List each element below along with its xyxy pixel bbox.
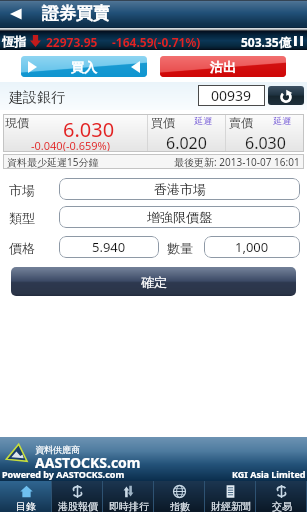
staticText: 確定 [141, 274, 167, 290]
staticText: 賣價 [229, 115, 253, 130]
staticText: 港股報價 [58, 500, 98, 512]
button[interactable]: 目錄 [0, 481, 52, 512]
staticText: 最後更新: 2013-10-07 16:01 [174, 155, 300, 169]
button[interactable]: 指數 [154, 481, 205, 512]
staticText: -0.040(-0.659%) [31, 138, 111, 153]
staticText: 恆指 [2, 34, 26, 49]
button[interactable]: 財經新聞 [205, 481, 256, 512]
button[interactable]: 香港市場 [59, 178, 300, 200]
staticText: AASTOCKS.com [35, 453, 141, 472]
staticText: 類型 [9, 210, 35, 226]
staticText: 市場 [9, 182, 35, 198]
button[interactable]: Back [8, 5, 24, 23]
staticText: 6.020 [166, 132, 207, 154]
staticText: 買價 [151, 115, 175, 130]
button[interactable]: 1,000 [204, 236, 300, 258]
button[interactable]: 港股報價 [52, 481, 103, 512]
staticText: 證券買賣 [42, 3, 110, 24]
button[interactable]: 交易 [256, 481, 307, 512]
staticText: 22973.95 [46, 34, 98, 50]
staticText: 交易 [272, 500, 292, 512]
button[interactable]: 確定 [11, 267, 296, 296]
staticText: 增強限價盤 [147, 209, 212, 225]
staticText: Powered by AASTOCKS.com [2, 468, 125, 480]
button[interactable]: 即時排行 [103, 481, 154, 512]
button[interactable]: 00939 [198, 85, 265, 106]
staticText: KGI Asia Limited [232, 468, 306, 480]
staticText: 延遲 [194, 115, 212, 126]
staticText: 資料最少延遲15分鐘 [7, 155, 99, 169]
staticText: 現價 [5, 115, 29, 130]
staticText: 沽出 [210, 59, 236, 75]
staticText: 00939 [211, 86, 252, 105]
staticText: 買入 [71, 59, 97, 75]
staticText: 1,000 [235, 238, 269, 256]
staticText: 資料供應商 [35, 444, 80, 455]
staticText: 香港市場 [154, 181, 206, 197]
button[interactable]: Refresh [268, 86, 304, 105]
staticText: 目錄 [16, 500, 36, 512]
staticText: 建設銀行 [9, 89, 65, 107]
staticText: 指數 [170, 500, 190, 512]
staticText: 6.030 [245, 132, 286, 154]
staticText: -164.59(-0.71%) [112, 34, 201, 50]
button[interactable]: 5.940 [59, 236, 159, 258]
staticText: 數量 [167, 240, 193, 256]
staticText: 價格 [9, 240, 35, 256]
button[interactable]: 買入 [21, 56, 147, 77]
staticText: 延遲 [273, 115, 291, 126]
staticText: 6.030 [63, 116, 115, 143]
button[interactable]: 增強限價盤 [59, 206, 300, 228]
staticText: 財經新聞 [211, 500, 251, 512]
staticText: 5.940 [92, 238, 126, 256]
staticText: 503.35億 [241, 34, 291, 50]
button[interactable]: 沽出 [160, 56, 286, 77]
staticText: 即時排行 [109, 500, 149, 512]
